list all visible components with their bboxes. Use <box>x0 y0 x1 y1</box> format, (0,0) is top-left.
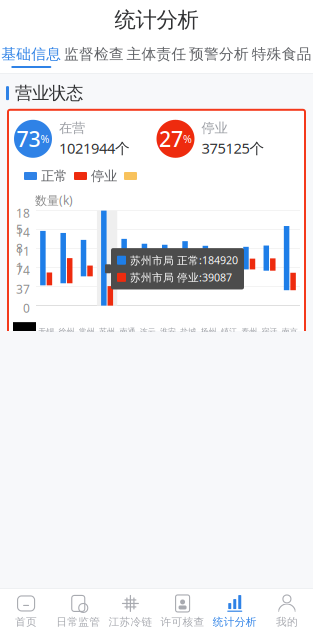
button[interactable]: 首页 <box>0 589 52 633</box>
staticText: 在营 <box>59 120 85 136</box>
staticText: 148 <box>16 224 30 256</box>
button[interactable]: 统计分析 <box>209 589 261 633</box>
staticText: 淮安 <box>160 327 176 336</box>
button[interactable]: 日常监管 <box>52 589 104 633</box>
staticText: 停业 <box>91 168 117 184</box>
staticText: 无锡 <box>38 327 54 336</box>
button[interactable]: 我的 <box>261 589 313 633</box>
staticText: 镇江 <box>221 327 237 336</box>
staticText: 我的 <box>276 615 298 628</box>
staticText: 首页 <box>15 615 37 628</box>
staticText: 停业 <box>201 120 227 136</box>
staticText: 1021944个 <box>59 138 130 158</box>
staticText: 徐州 <box>58 327 74 336</box>
staticText: 常州 <box>79 327 95 336</box>
staticText: 0 <box>23 300 30 316</box>
button[interactable]: 许可核查 <box>156 589 209 633</box>
staticText: 统计分析 <box>114 7 198 33</box>
staticText: 南通 <box>119 327 135 336</box>
button[interactable]: 特殊食品 <box>250 40 313 73</box>
button[interactable]: 江苏冷链 <box>104 589 156 633</box>
button[interactable]: 基础信息 <box>0 40 63 73</box>
staticText: 苏州市局 正常:184920 <box>130 253 238 267</box>
staticText: 预警分析 <box>189 45 249 63</box>
staticText: % <box>183 132 192 146</box>
staticText: 73 <box>16 125 40 153</box>
staticText: 37 <box>16 281 30 297</box>
button[interactable]: 预警分析 <box>188 40 250 73</box>
staticText: 特殊食品 <box>252 45 312 63</box>
staticText: 正常 <box>41 168 67 184</box>
staticText: 27 <box>159 125 183 153</box>
staticText: 连云 <box>140 327 156 336</box>
staticText: 日常监管 <box>56 615 100 628</box>
staticText: 盐城 <box>180 327 196 336</box>
staticText: 营业状态 <box>15 82 83 104</box>
staticText: % <box>40 132 49 146</box>
staticText: 苏州市局 停业:39087 <box>130 270 232 284</box>
staticText: 375125个 <box>201 138 264 158</box>
staticText: 111 <box>16 243 30 275</box>
staticText: 扬州 <box>201 327 217 336</box>
staticText: 宿迁 <box>261 327 277 336</box>
staticText: 南京 <box>282 327 298 336</box>
staticText: 苏州 <box>99 327 115 336</box>
button[interactable]: 监督检查 <box>63 40 125 73</box>
staticText: 基础信息 <box>1 45 61 63</box>
staticText: 185 <box>16 205 30 237</box>
staticText: 泰州 <box>241 327 257 336</box>
button[interactable]: 主体责任 <box>125 40 188 73</box>
staticText: 监督检查 <box>64 45 124 63</box>
staticText: 江苏冷链 <box>108 615 152 628</box>
staticText: 统计分析 <box>213 615 257 628</box>
staticText: 数量(k) <box>35 192 73 208</box>
staticText: 74 <box>16 262 30 278</box>
staticText: 主体责任 <box>126 45 186 63</box>
staticText: 许可核查 <box>161 615 205 628</box>
